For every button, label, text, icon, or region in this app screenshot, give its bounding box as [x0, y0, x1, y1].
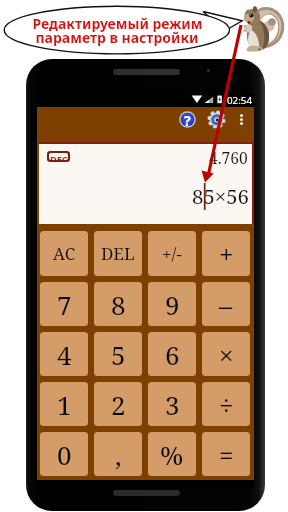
- staticText: параметр в настройки: [35, 28, 199, 47]
- staticText: 6: [165, 337, 180, 372]
- button[interactable]: ÷: [202, 382, 250, 426]
- staticText: ,: [115, 437, 122, 472]
- button[interactable]: 7: [40, 282, 88, 326]
- button[interactable]: ×: [202, 332, 250, 376]
- staticText: 4: [57, 337, 72, 372]
- staticText: 5: [111, 337, 126, 372]
- staticText: =: [219, 437, 234, 472]
- button[interactable]: 3: [148, 382, 196, 426]
- staticText: ?: [184, 111, 191, 128]
- button[interactable]: 9: [148, 282, 196, 326]
- button[interactable]: +: [202, 231, 250, 276]
- staticText: 7: [57, 287, 72, 322]
- button[interactable]: DEC: [49, 153, 68, 160]
- staticText: 02:54: [227, 94, 253, 107]
- button[interactable]: 8: [94, 282, 142, 326]
- staticText: ÷: [219, 387, 234, 422]
- button[interactable]: 0: [40, 432, 88, 476]
- button[interactable]: ,: [94, 432, 142, 476]
- button[interactable]: 5: [94, 332, 142, 376]
- staticText: 3: [165, 387, 180, 422]
- staticText: 0: [57, 437, 72, 472]
- staticText: DEL: [101, 242, 135, 265]
- staticText: Редактируемый режим: [32, 14, 203, 33]
- staticText: +/-: [162, 242, 182, 265]
- button[interactable]: More options: [235, 109, 247, 129]
- staticText: 9: [165, 287, 180, 322]
- staticText: 4.760: [209, 147, 248, 168]
- staticText: AC: [53, 242, 76, 265]
- button[interactable]: Help: [179, 111, 196, 128]
- button[interactable]: +/-: [148, 231, 196, 276]
- staticText: +: [219, 236, 234, 271]
- button[interactable]: 1: [40, 382, 88, 426]
- button[interactable]: =: [202, 432, 250, 476]
- staticText: 8: [111, 287, 126, 322]
- staticText: %: [160, 437, 184, 472]
- button[interactable]: AC: [40, 231, 88, 276]
- staticText: DEC: [50, 153, 68, 160]
- button[interactable]: 6: [148, 332, 196, 376]
- staticText: 1: [57, 387, 72, 422]
- button[interactable]: DEL: [94, 231, 142, 276]
- staticText: ×: [219, 337, 234, 372]
- button[interactable]: –: [202, 282, 250, 326]
- staticText: 85×56: [192, 182, 249, 210]
- staticText: 2: [111, 387, 126, 422]
- button[interactable]: %: [148, 432, 196, 476]
- button[interactable]: 2: [94, 382, 142, 426]
- button[interactable]: Settings: [208, 111, 225, 128]
- button[interactable]: 4: [40, 332, 88, 376]
- staticText: –: [219, 287, 233, 322]
